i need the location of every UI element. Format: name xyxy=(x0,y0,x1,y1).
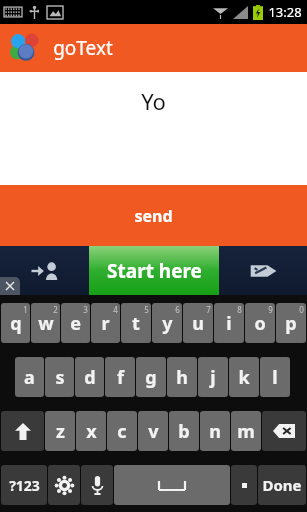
staticText: 3 xyxy=(83,304,88,315)
button[interactable]: e xyxy=(61,303,90,343)
button[interactable]: Sign in xyxy=(0,246,89,295)
button[interactable]: ?123 xyxy=(1,465,47,505)
staticText: e xyxy=(70,311,81,336)
staticText: h xyxy=(176,365,188,390)
button[interactable]: Settings xyxy=(48,465,80,505)
button[interactable]: a xyxy=(15,357,44,397)
button[interactable]: d xyxy=(75,357,104,397)
staticText: send xyxy=(134,205,173,227)
button[interactable]: s xyxy=(45,357,74,397)
staticText: Done xyxy=(262,475,302,495)
staticText: 1 xyxy=(23,304,28,315)
button[interactable]: b xyxy=(169,411,199,451)
button[interactable]: Backspace xyxy=(262,411,306,451)
button[interactable]: j xyxy=(198,357,228,397)
button[interactable]: Voice input xyxy=(81,465,113,505)
button[interactable]: v xyxy=(138,411,168,451)
button[interactable]: x xyxy=(76,411,106,451)
staticText: z xyxy=(56,419,65,444)
button[interactable]: Shift xyxy=(1,411,44,451)
button[interactable]: r xyxy=(91,303,120,343)
staticText: d xyxy=(84,365,96,390)
button[interactable]: Close ad xyxy=(0,277,20,295)
staticText: goText xyxy=(53,35,113,61)
staticText: a xyxy=(24,365,35,390)
button[interactable]: g xyxy=(136,357,166,397)
staticText: m xyxy=(237,419,255,444)
button[interactable]: q xyxy=(1,303,30,343)
staticText: g xyxy=(145,365,157,390)
button[interactable]: Start here xyxy=(89,246,219,295)
button[interactable]: p xyxy=(276,303,306,343)
staticText: 0 xyxy=(299,304,304,315)
button[interactable]: Done xyxy=(258,465,306,505)
staticText: ?123 xyxy=(9,476,40,495)
staticText: t xyxy=(132,311,140,336)
staticText: u xyxy=(192,311,204,336)
staticText: j xyxy=(210,365,216,390)
button[interactable]: m xyxy=(231,411,261,451)
button[interactable]: l xyxy=(260,357,290,397)
button[interactable] xyxy=(231,465,257,505)
staticText: 13:28 xyxy=(268,3,302,21)
staticText: l xyxy=(272,365,278,390)
staticText: n xyxy=(209,419,221,444)
staticText: w xyxy=(38,311,54,336)
button[interactable]: f xyxy=(105,357,135,397)
staticText: i xyxy=(226,311,232,336)
staticText: x xyxy=(86,419,97,444)
staticText: f xyxy=(117,365,124,390)
staticText: 8 xyxy=(237,304,242,315)
staticText: v xyxy=(148,419,159,444)
staticText: r xyxy=(101,311,110,336)
button[interactable]: t xyxy=(121,303,151,343)
staticText: b xyxy=(178,419,190,444)
button[interactable]: h xyxy=(167,357,197,397)
button[interactable]: y xyxy=(152,303,182,343)
button[interactable]: n xyxy=(200,411,230,451)
button[interactable]: k xyxy=(229,357,259,397)
staticText: 7 xyxy=(206,304,211,315)
button[interactable]: o xyxy=(245,303,275,343)
staticText: 9 xyxy=(268,304,273,315)
button[interactable]: Space xyxy=(114,465,230,505)
staticText: 4 xyxy=(113,304,118,315)
button[interactable]: u xyxy=(183,303,213,343)
staticText: o xyxy=(254,311,266,336)
button[interactable]: w xyxy=(31,303,60,343)
staticText: y xyxy=(162,311,173,336)
button[interactable]: Offers xyxy=(219,246,307,295)
staticText: s xyxy=(55,365,65,390)
staticText: 2 xyxy=(53,304,58,315)
staticText: k xyxy=(238,365,250,390)
staticText: Yo xyxy=(141,86,166,116)
button[interactable]: i xyxy=(214,303,244,343)
staticText: 5 xyxy=(144,304,149,315)
button[interactable]: z xyxy=(45,411,75,451)
staticText: q xyxy=(10,311,22,336)
button[interactable]: send xyxy=(0,185,307,246)
button[interactable]: c xyxy=(107,411,137,451)
staticText: 6 xyxy=(175,304,180,315)
staticText: Start here xyxy=(107,258,202,284)
staticText: c xyxy=(117,419,127,444)
staticText: p xyxy=(285,311,297,336)
